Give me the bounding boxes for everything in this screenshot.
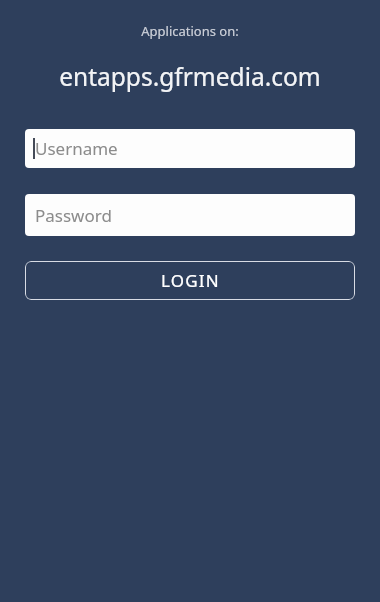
staticText: Username (35, 137, 118, 160)
staticText: Password (35, 204, 112, 227)
staticText: LOGIN (161, 269, 220, 292)
staticText: entapps.gfrmedia.com (59, 60, 321, 93)
staticText: Applications on: (141, 22, 239, 40)
button[interactable]: Login (25, 261, 355, 300)
button[interactable]: Username (25, 129, 355, 168)
button[interactable]: Password (25, 194, 355, 236)
